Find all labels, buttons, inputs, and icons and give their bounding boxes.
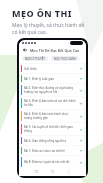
button[interactable]: Bài 4: Định lý bảo toàn hành và tư tưởng… [21,110,84,122]
button[interactable]: Back [22,47,28,53]
button[interactable]: MẸO THỰC HÀNH [51,56,79,61]
button[interactable]: Bài 5: Các tuyến tố thứ tiết chiến giao … [21,123,84,135]
staticText: Bài 7: Điểm an toàn của môi hệ [24,149,77,153]
button[interactable]: Bài 1: Định lý Luật giao [21,74,84,83]
button[interactable]: Bài 3: Định lý bảo toàn và các tính hành… [21,97,84,109]
button[interactable]: Bài 9: Tiêu chuẩn ô tô tiêu chủ công môi… [21,169,84,175]
button[interactable]: Bài 6: Giao thông nông người ta [21,136,84,145]
staticText: Bài 9: Tiêu chuẩn ô tô tiêu chủ công môi… [24,169,77,175]
button[interactable]: Bài 8: Điểm tư ngoài và các môi tốt [21,156,84,168]
button[interactable]: Giới thiệu [21,64,84,73]
staticText: Bài 6: Giao thông nông người ta [24,139,77,143]
button[interactable]: MẸO LÝ THUYẾT [22,56,48,61]
staticText: Giới thiệu [24,67,77,71]
staticText: Bài 1: Định lý Luật giao [24,77,77,81]
staticText: Mẹo lý thuyết, sả thực hành dễ có kết qu… [12,22,85,36]
staticText: Bài 8: Điểm tư ngoài và các môi tốt [24,160,77,164]
button[interactable]: Bài 2: Định thức đường và và phương hướn… [21,84,84,96]
button[interactable]: Recents [34,169,39,174]
button[interactable]: Bài 7: Điểm an toàn của môi hệ [21,146,84,155]
button[interactable]: Back [66,169,71,174]
staticText: MẸO THỰC HÀNH [54,57,76,61]
staticText: Bài 2: Định thức đường và và phương hướn… [24,86,77,94]
staticText: MẸO LÝ THUYẾT [25,57,45,61]
staticText: Mẹo Thi Để Đạt Kết Quả Cao [30,48,80,53]
staticText: MẸO ÔN THI [12,7,72,19]
staticText: Bài 3: Định lý bảo toàn và các tính hành… [24,99,77,107]
staticText: Bài 4: Định lý bảo toàn hành và tư tưởng… [24,112,77,120]
button[interactable]: Home [50,169,55,174]
staticText: Bài 5: Các tuyến tố thứ tiết chiến giao … [24,125,77,133]
